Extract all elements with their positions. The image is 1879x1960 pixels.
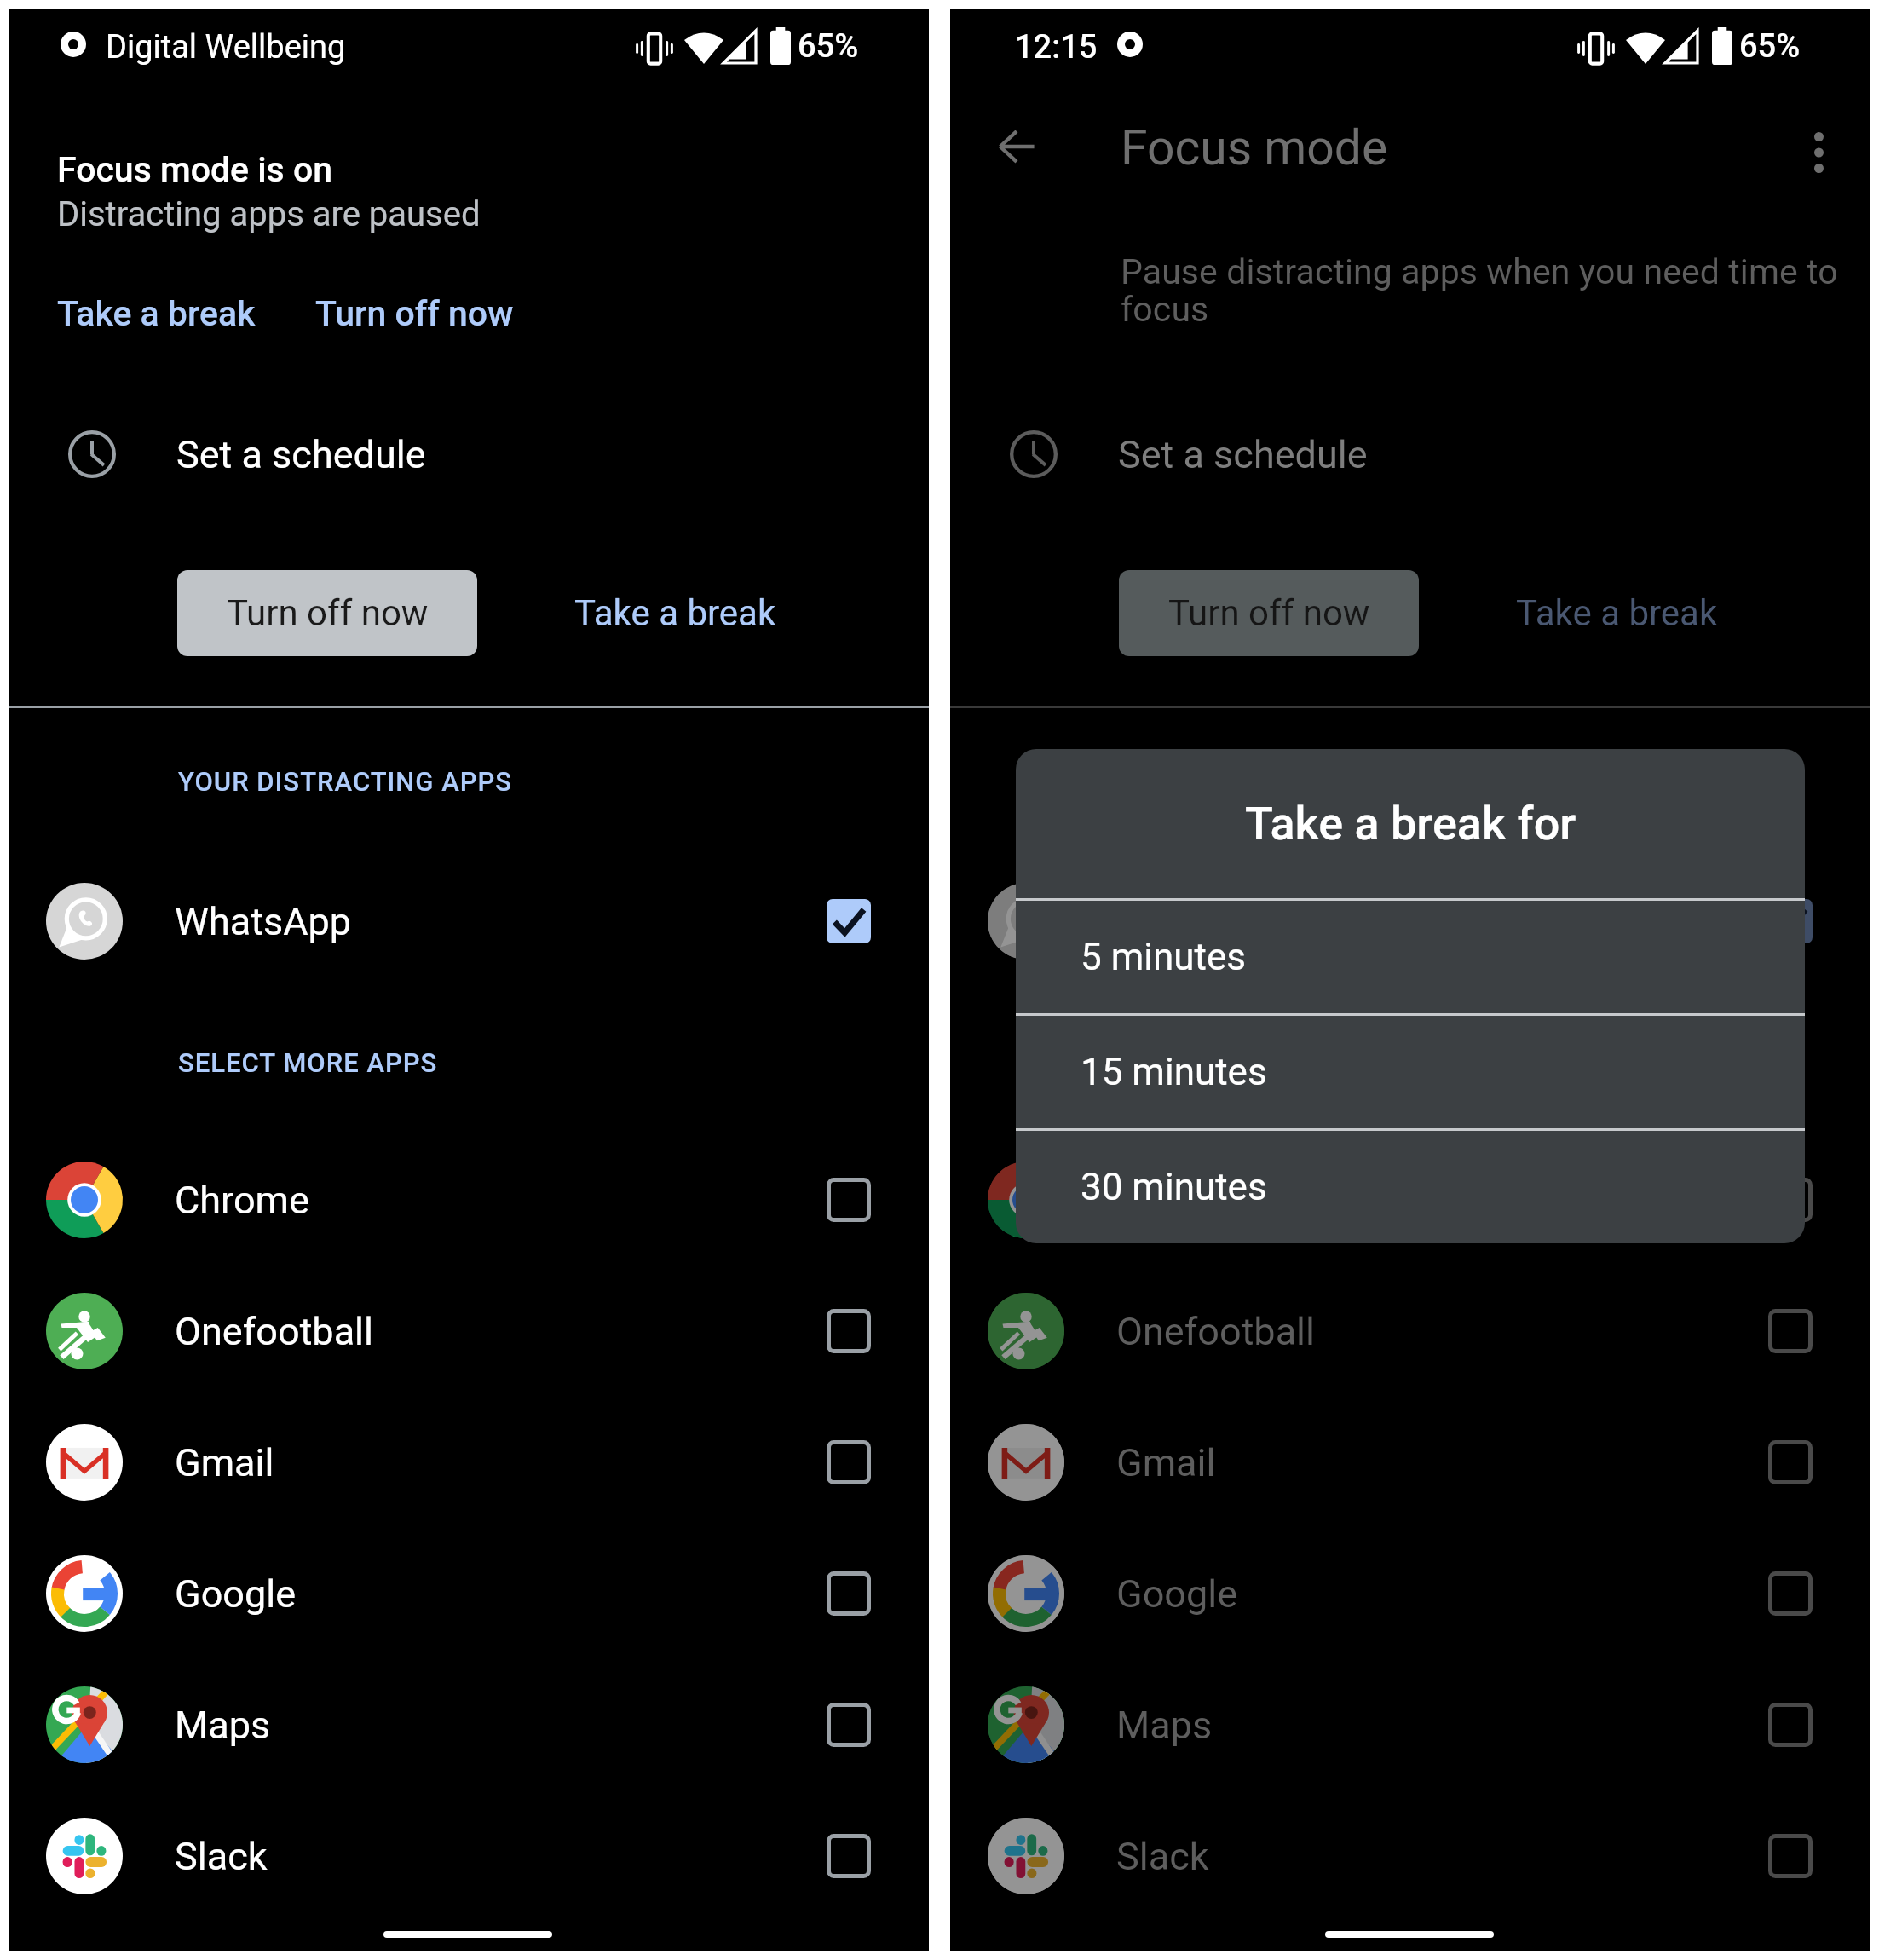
staticText: 65%	[1739, 27, 1801, 66]
button[interactable]: Google	[9, 1551, 929, 1636]
button[interactable]: Maps	[950, 1682, 1870, 1767]
staticText: Digital Wellbeing	[106, 28, 346, 66]
staticText: Take a break	[57, 293, 256, 334]
staticText: WhatsApp	[1116, 899, 1294, 944]
button[interactable]: 15 minutes	[1016, 1016, 1805, 1128]
button[interactable]: Onefootball	[950, 1288, 1870, 1374]
button[interactable]: Slack	[950, 1813, 1870, 1899]
button[interactable]: Set a schedule	[9, 406, 929, 503]
staticText: 30 minutes	[1081, 1165, 1267, 1209]
staticText: Chrome	[1116, 1178, 1251, 1223]
button[interactable]: Turn off now	[1119, 570, 1419, 656]
staticText: Slack	[175, 1834, 268, 1879]
staticText: Take a break	[574, 592, 776, 634]
button[interactable]: WhatsApp	[950, 879, 1870, 964]
button[interactable]: Gmail	[950, 1420, 1870, 1505]
button[interactable]: Gmail	[9, 1420, 929, 1505]
staticText: Turn off now	[227, 592, 429, 634]
staticText: 5 minutes	[1081, 935, 1246, 979]
staticText: Set a schedule	[176, 432, 426, 477]
staticText: Gmail	[1116, 1440, 1216, 1485]
staticText: Focus mode	[1121, 119, 1388, 176]
button[interactable]: 5 minutes	[1016, 901, 1805, 1013]
button[interactable]: 30 minutes	[1016, 1131, 1805, 1243]
button[interactable]: Take a break	[554, 570, 797, 656]
staticText: YOUR DISTRACTING APPS	[178, 766, 513, 797]
staticText: Take a break for	[1245, 797, 1576, 850]
staticText: Take a break	[1516, 592, 1718, 634]
staticText: Distracting apps are paused	[57, 194, 481, 234]
staticText: Google	[1116, 1571, 1238, 1617]
staticText: Focus mode is on	[57, 149, 332, 190]
staticText: 15 minutes	[1081, 1050, 1267, 1094]
button[interactable]: Back	[983, 112, 1051, 181]
staticText: SELECT MORE APPS	[1120, 1047, 1380, 1078]
staticText: 12:15	[1015, 28, 1098, 66]
staticText: SELECT MORE APPS	[178, 1047, 438, 1078]
staticText: Onefootball	[175, 1309, 373, 1354]
button[interactable]: Chrome	[950, 1157, 1870, 1242]
staticText: Set a schedule	[1118, 432, 1368, 477]
staticText: Gmail	[175, 1440, 274, 1485]
button[interactable]: Google	[950, 1551, 1870, 1636]
staticText: Turn off now	[315, 293, 514, 334]
button[interactable]: Turn off now	[177, 570, 477, 656]
button[interactable]: Chrome	[9, 1157, 929, 1242]
staticText: Google	[175, 1571, 297, 1617]
staticText: Turn off now	[1168, 592, 1370, 634]
staticText: WhatsApp	[175, 899, 352, 944]
button[interactable]: Take a break	[1496, 570, 1738, 656]
button[interactable]: Slack	[9, 1813, 929, 1899]
staticText: Onefootball	[1116, 1309, 1315, 1354]
staticText: Slack	[1116, 1834, 1209, 1879]
button[interactable]: Set a schedule	[950, 406, 1870, 503]
staticText: Maps	[1116, 1703, 1213, 1748]
button[interactable]: Maps	[9, 1682, 929, 1767]
button[interactable]: More options	[1786, 120, 1851, 185]
staticText: Maps	[175, 1703, 271, 1748]
button[interactable]: WhatsApp	[9, 879, 929, 964]
button[interactable]: Turn off now	[304, 285, 525, 343]
staticText: Pause distracting apps when you need tim…	[1121, 251, 1838, 330]
staticText: Chrome	[175, 1178, 309, 1223]
button[interactable]: Onefootball	[9, 1288, 929, 1374]
button[interactable]: Take a break	[46, 285, 267, 343]
staticText: 65%	[798, 27, 859, 66]
